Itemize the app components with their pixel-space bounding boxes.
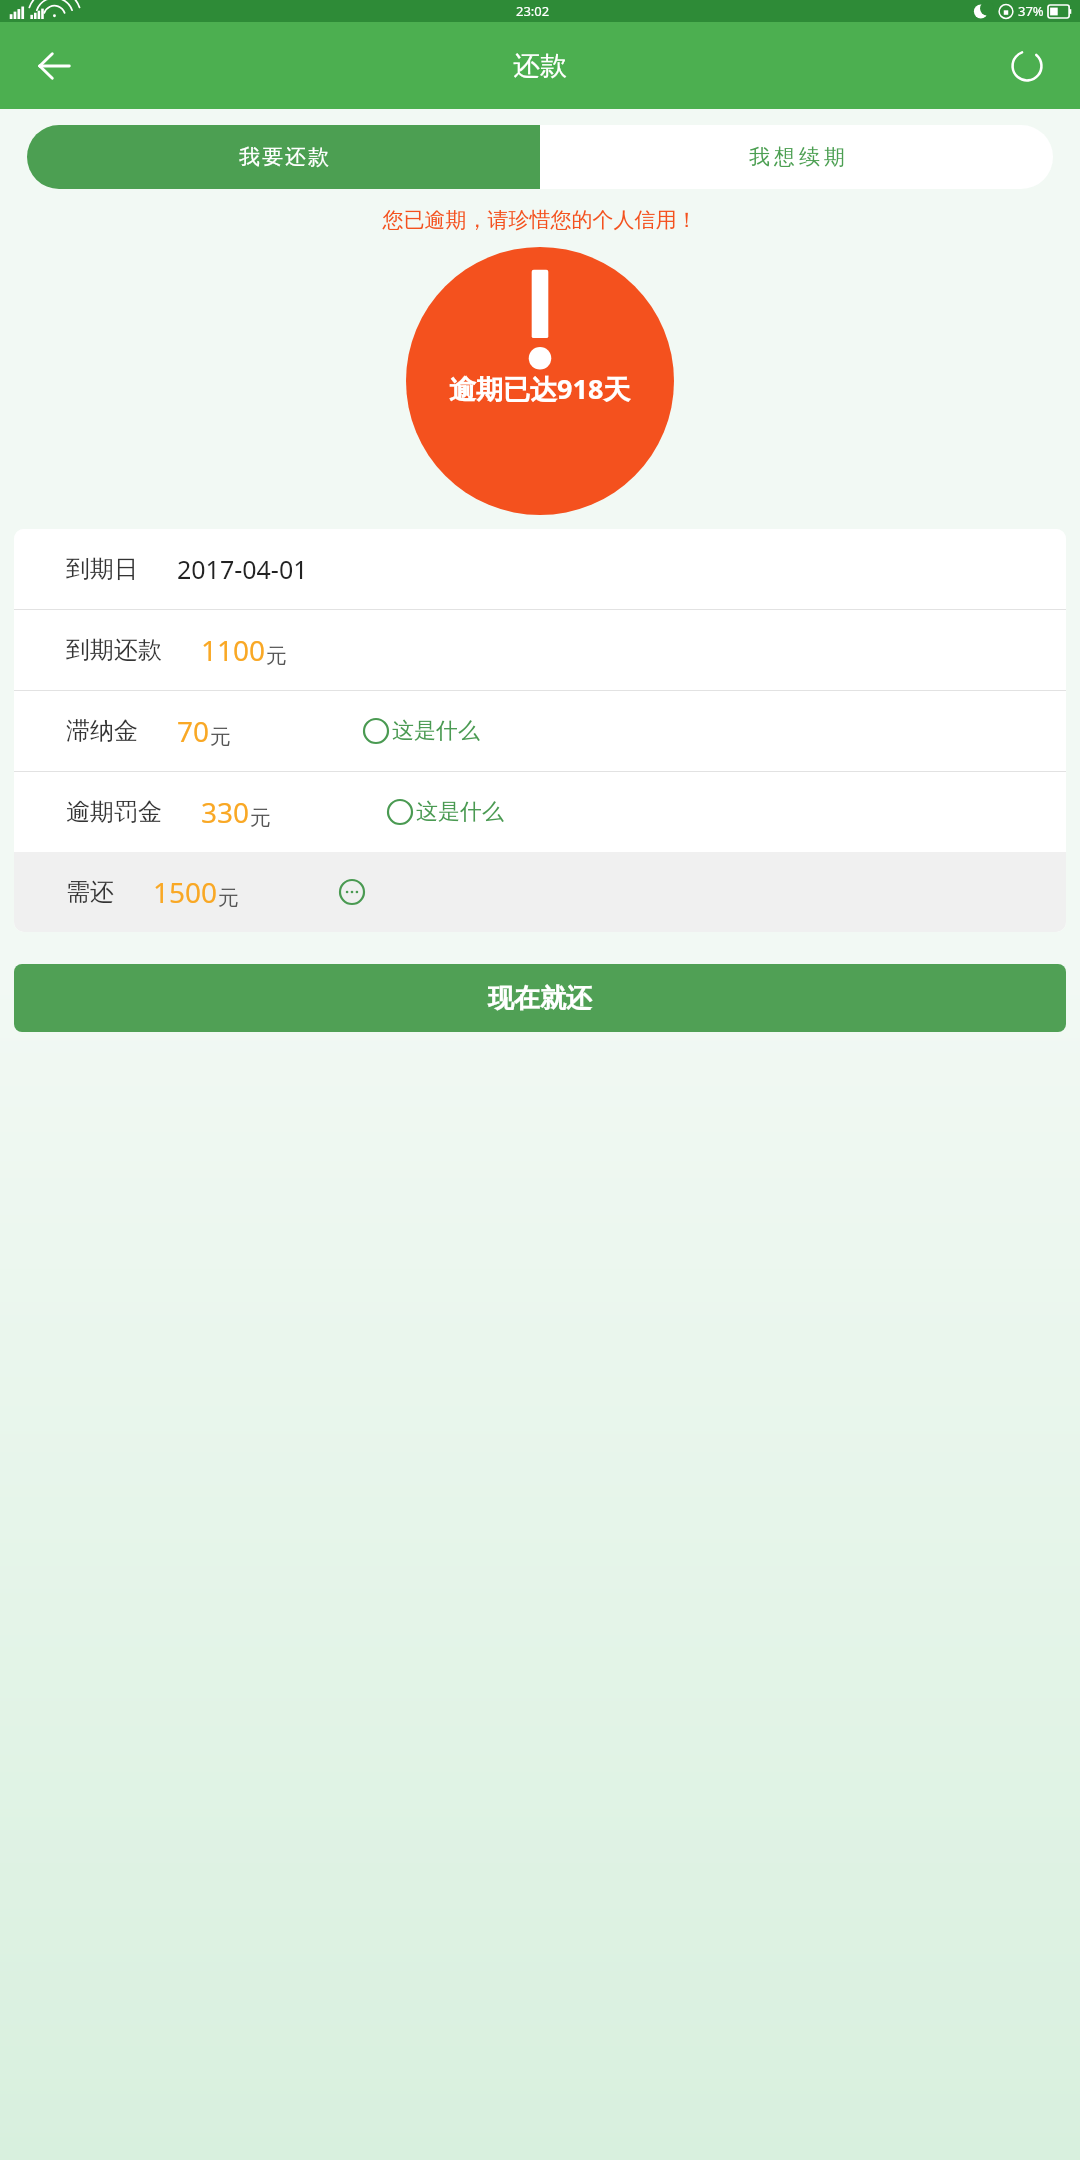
staticText: 1500: [153, 873, 218, 911]
button[interactable]: Back: [22, 34, 86, 98]
button[interactable]: Refresh: [996, 35, 1058, 97]
staticText: 滞纳金: [66, 716, 138, 746]
staticText: 这是什么: [416, 798, 504, 826]
button[interactable]: 这是什么: [359, 713, 484, 749]
staticText: 1100: [201, 631, 266, 669]
staticText: 到期日: [66, 554, 138, 584]
staticText: 逾期罚金: [66, 797, 162, 827]
button[interactable]: 滞纳金: [14, 691, 1066, 771]
staticText: 元: [210, 724, 231, 750]
staticText: 330: [201, 793, 250, 831]
staticText: 还款: [513, 49, 567, 83]
staticText: 2017-04-01: [177, 552, 308, 586]
staticText: 逾期已达918天: [449, 370, 631, 407]
button[interactable]: 现在就还: [14, 964, 1066, 1032]
staticText: 需还: [66, 877, 114, 907]
staticText: 70: [177, 712, 210, 750]
button[interactable]: 到期日: [14, 529, 1066, 609]
staticText: 23:02: [516, 2, 550, 20]
staticText: 元: [250, 805, 271, 831]
button[interactable]: 我想续期: [540, 125, 1053, 189]
button[interactable]: 我要还款: [27, 125, 540, 189]
staticText: 现在就还: [488, 982, 592, 1015]
staticText: 这是什么: [392, 717, 480, 745]
staticText: 我要还款: [238, 144, 330, 170]
staticText: 元: [218, 885, 239, 911]
staticText: 我想续期: [747, 144, 847, 170]
button[interactable]: 需还: [14, 852, 1066, 932]
button[interactable]: 到期还款: [14, 610, 1066, 690]
staticText: 您已逾期，请珍惜您的个人信用！: [0, 207, 1080, 233]
button[interactable]: More details: [335, 875, 369, 909]
button[interactable]: 这是什么: [383, 794, 508, 830]
staticText: 到期还款: [66, 635, 162, 665]
staticText: 37%: [1018, 2, 1044, 20]
button[interactable]: 逾期罚金: [14, 772, 1066, 852]
staticText: 元: [266, 643, 287, 669]
